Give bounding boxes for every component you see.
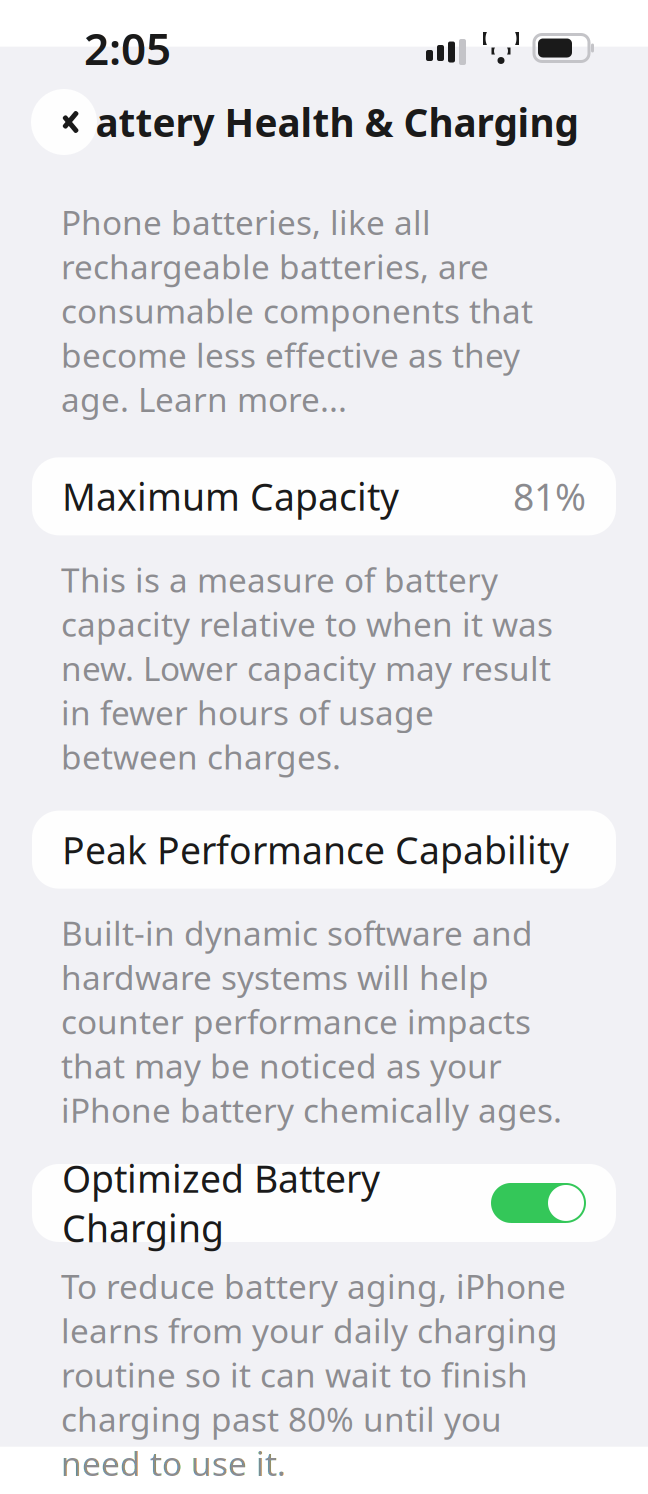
staticText: Battery Health & Charging	[69, 96, 578, 148]
button[interactable]: Optimized Battery Charging	[32, 1164, 616, 1242]
staticText: Maximum Capacity	[62, 471, 399, 521]
staticText: Optimized Battery Charging	[62, 1153, 380, 1253]
staticText: To reduce battery aging, iPhone learns f…	[61, 1264, 566, 1485]
staticText: This is a measure of battery capacity re…	[61, 557, 553, 779]
staticText: 81%	[513, 471, 586, 521]
staticText: Peak Performance Capability	[62, 825, 569, 874]
button[interactable]: Maximum Capacity	[32, 457, 616, 535]
button[interactable]: Peak Performance Capability	[32, 811, 616, 889]
button[interactable]: Back	[31, 89, 97, 155]
staticText: 2:05	[84, 19, 171, 77]
staticText: Built-in dynamic software and hardware s…	[61, 911, 562, 1132]
staticText: Phone batteries, like all rechargeable b…	[61, 200, 533, 421]
